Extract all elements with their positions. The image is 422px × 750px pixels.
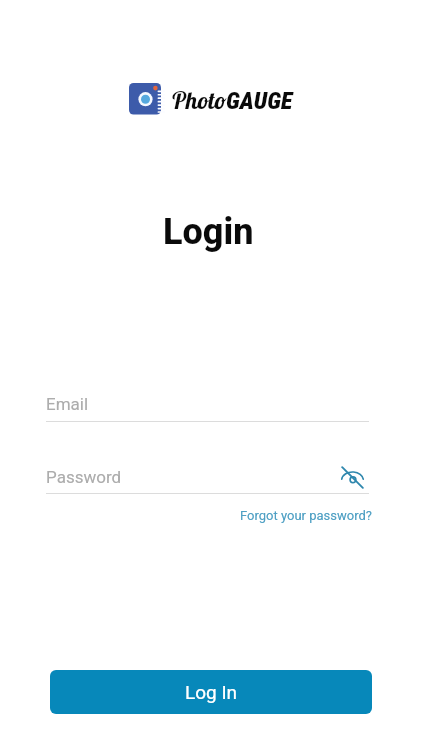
button[interactable]: Forgot your password? xyxy=(240,508,372,523)
staticText: PhotoGAUGE xyxy=(171,85,293,115)
button[interactable]: Show password xyxy=(338,463,367,492)
staticText: Email xyxy=(46,394,89,414)
staticText: Password xyxy=(46,467,122,487)
staticText: Login xyxy=(163,211,254,253)
button[interactable]: Log In xyxy=(50,670,372,714)
staticText: Log In xyxy=(185,681,238,703)
